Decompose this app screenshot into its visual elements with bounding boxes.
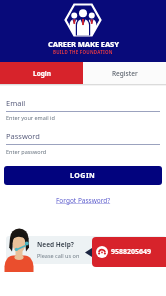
staticText: 9588205649 xyxy=(111,247,152,257)
staticText: Need Help? xyxy=(37,240,74,249)
button[interactable]: Forgot Password? xyxy=(56,196,111,205)
staticText: Enter your email id xyxy=(6,114,55,121)
button[interactable]: 9588205649 xyxy=(92,237,166,267)
staticText: Enter password xyxy=(6,148,47,155)
staticText: Password xyxy=(6,131,40,141)
staticText: BUILD THE FOUNDATION xyxy=(53,49,113,55)
staticText: Register xyxy=(112,69,138,78)
button[interactable]: Login xyxy=(0,62,83,84)
staticText: LOGIN xyxy=(70,171,96,181)
staticText: Please call us on xyxy=(37,252,80,259)
staticText: Email xyxy=(6,98,26,108)
button[interactable]: LOGIN xyxy=(4,166,162,185)
staticText: Login xyxy=(33,69,51,78)
button[interactable]: Register xyxy=(83,62,166,84)
staticText: CAREER MAKE EASY xyxy=(48,39,119,49)
